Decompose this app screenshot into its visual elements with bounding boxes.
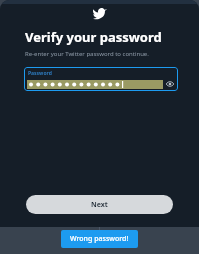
staticText: Password [28, 70, 52, 77]
button[interactable]: Show password [165, 79, 175, 89]
button[interactable]: Wrong password! [61, 230, 138, 248]
staticText: Wrong password! [70, 234, 129, 244]
staticText: Verify your password [25, 28, 162, 46]
button[interactable]: Password [24, 67, 178, 91]
button[interactable]: Next [26, 195, 173, 214]
staticText: Next [91, 200, 108, 210]
staticText: Re-enter your Twitter password to contin… [25, 50, 149, 58]
